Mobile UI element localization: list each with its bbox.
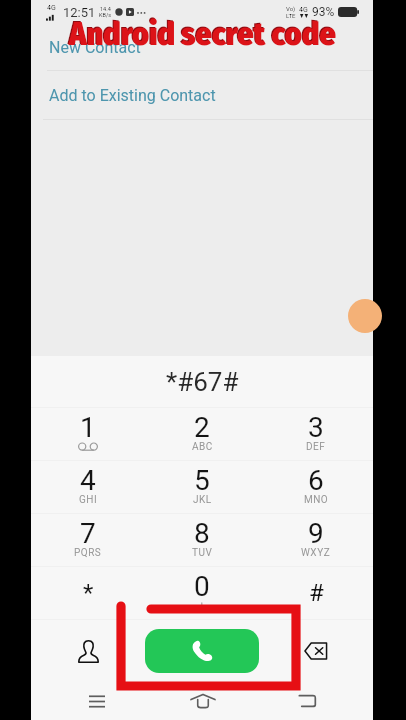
staticText: 7	[80, 517, 96, 550]
button[interactable]: Backspace	[259, 620, 373, 682]
button[interactable]: Recents	[44, 682, 150, 720]
staticText: Vo)	[286, 5, 296, 12]
button[interactable]: 6	[259, 461, 373, 513]
staticText: 4G	[47, 4, 56, 12]
staticText: 12:51	[63, 5, 96, 20]
staticText: LTE	[286, 12, 296, 19]
button[interactable]: Contacts	[31, 620, 145, 682]
staticText: GHI	[79, 494, 98, 506]
button[interactable]: New Contact	[31, 24, 373, 70]
button[interactable]: 4	[31, 461, 145, 513]
staticText: Android secret code	[69, 15, 336, 53]
staticText: WXYZ	[301, 547, 331, 559]
button[interactable]: 0	[145, 567, 259, 619]
staticText: ABC	[192, 441, 213, 453]
staticText: New Contact	[49, 38, 141, 57]
staticText: *	[83, 579, 94, 607]
button[interactable]: *	[31, 567, 145, 619]
staticText: TUV	[192, 547, 213, 559]
staticText: 8	[194, 517, 210, 550]
staticText: *#67#	[166, 367, 239, 397]
staticText: KB/s	[99, 12, 111, 18]
button[interactable]: 5	[145, 461, 259, 513]
button[interactable]: Add to Existing Contact	[31, 71, 373, 119]
button[interactable]: Home	[150, 682, 255, 720]
staticText: 2	[194, 411, 210, 444]
button[interactable]: 8	[145, 514, 259, 566]
staticText: #	[309, 579, 324, 607]
staticText: 93%	[312, 5, 335, 19]
button[interactable]: 3	[259, 408, 373, 460]
staticText: +	[199, 600, 206, 612]
staticText: PQRS	[74, 547, 102, 559]
staticText: 4G	[299, 6, 308, 14]
button[interactable]: 7	[31, 514, 145, 566]
button[interactable]: 2	[145, 408, 259, 460]
staticText: 4	[80, 464, 96, 497]
staticText: 3	[308, 411, 324, 444]
staticText: 0	[194, 570, 210, 603]
staticText: Android secret code	[68, 14, 335, 52]
button[interactable]: 9	[259, 514, 373, 566]
staticText: DEF	[306, 441, 326, 453]
staticText: 9	[308, 517, 324, 550]
button[interactable]: Back	[255, 682, 360, 720]
staticText: 6	[308, 464, 324, 497]
staticText: 14.4	[100, 6, 111, 12]
staticText: MNO	[304, 494, 329, 506]
staticText: 5	[194, 464, 210, 497]
button[interactable]: 1	[31, 408, 145, 460]
staticText: Add to Existing Contact	[49, 86, 216, 105]
staticText: JKL	[193, 494, 212, 506]
button[interactable]: #	[259, 567, 373, 619]
button[interactable]: Call	[145, 629, 259, 673]
staticText: 1	[80, 411, 96, 444]
